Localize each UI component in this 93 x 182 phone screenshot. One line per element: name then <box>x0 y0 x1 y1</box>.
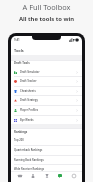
staticText: Bye Weeks <box>20 118 34 122</box>
staticText: Quarterback Rankings <box>14 148 43 152</box>
staticText: All the tools to win <box>0 15 93 23</box>
button[interactable]: Draft Simulator <box>11 67 82 77</box>
button[interactable]: Bye Weeks <box>11 115 82 125</box>
staticText: Top 200 <box>14 138 24 142</box>
staticText: Tools <box>14 48 24 53</box>
button[interactable]: Draft Strategy <box>11 95 82 105</box>
button[interactable]: Top 200 <box>11 135 82 145</box>
staticText: 9:41 <box>14 38 20 42</box>
button[interactable]: Player Profiles <box>11 105 82 115</box>
staticText: Draft Simulator <box>20 70 40 74</box>
button[interactable]: Profile <box>69 171 79 181</box>
button[interactable]: Tools <box>42 171 52 181</box>
staticText: Player Profiles <box>20 108 39 112</box>
staticText: Draft Tracker <box>20 79 37 83</box>
staticText: Rankings <box>14 130 28 134</box>
staticText: Wide Receiver Rankings <box>14 167 45 171</box>
staticText: Draft Strategy <box>20 98 38 102</box>
button[interactable]: Chat <box>55 171 65 181</box>
staticText: Draft Tools <box>14 61 30 65</box>
staticText: Running Back Rankings <box>14 158 44 162</box>
staticText: Cheatsheets <box>20 89 36 93</box>
button[interactable]: Players <box>28 171 38 181</box>
button[interactable]: Draft Tracker <box>11 76 82 86</box>
button[interactable]: Tools <box>11 46 82 55</box>
button[interactable]: Cheatsheets <box>11 86 82 96</box>
button[interactable]: Home <box>15 171 25 181</box>
button[interactable]: Quarterback Rankings <box>11 145 82 155</box>
staticText: A Full Toolbox <box>0 2 93 12</box>
button[interactable]: Running Back Rankings <box>11 155 82 165</box>
button[interactable]: Wide Receiver Rankings <box>11 164 82 174</box>
